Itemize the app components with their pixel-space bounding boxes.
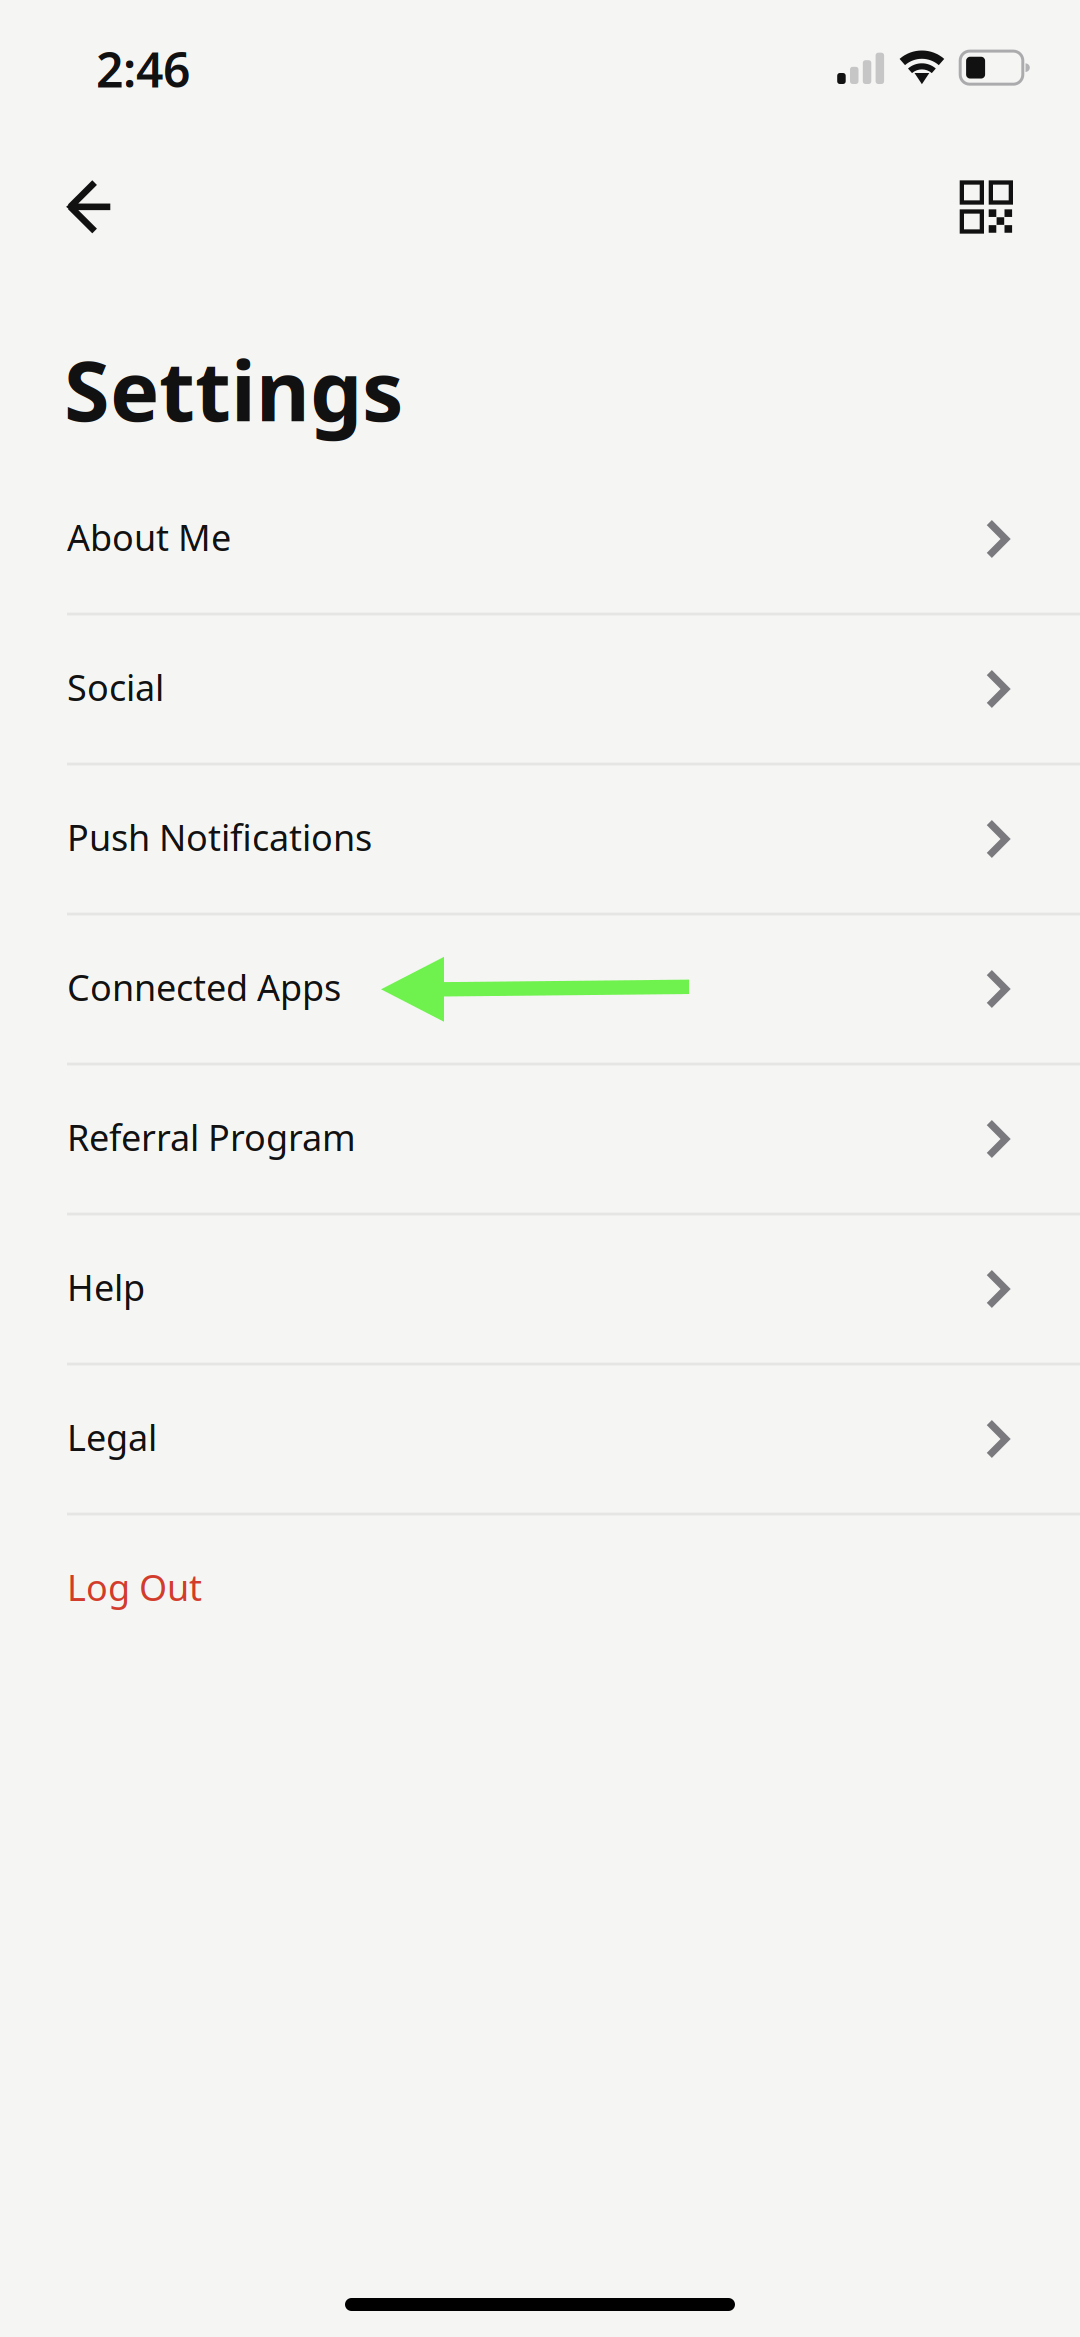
button[interactable]: Log Out bbox=[0, 1515, 1080, 1663]
button[interactable]: Back bbox=[66, 161, 166, 253]
button[interactable]: Scan QR code bbox=[913, 161, 1013, 253]
button[interactable]: Legal bbox=[0, 1365, 1080, 1513]
button[interactable]: Help bbox=[0, 1215, 1080, 1363]
button[interactable]: Referral Program bbox=[0, 1065, 1080, 1213]
staticText: Social bbox=[67, 663, 164, 711]
staticText: Help bbox=[67, 1263, 145, 1311]
staticText: About Me bbox=[67, 513, 231, 561]
staticText: Referral Program bbox=[67, 1113, 356, 1161]
staticText: Legal bbox=[67, 1413, 157, 1461]
button[interactable]: Connected Apps bbox=[0, 915, 1080, 1063]
button[interactable]: About Me bbox=[0, 465, 1080, 613]
staticText: Connected Apps bbox=[67, 963, 341, 1011]
staticText: Push Notifications bbox=[67, 813, 372, 861]
staticText: Settings bbox=[64, 334, 403, 444]
button[interactable]: Push Notifications bbox=[0, 765, 1080, 913]
staticText: Log Out bbox=[67, 1563, 202, 1611]
button[interactable]: Social bbox=[0, 615, 1080, 763]
staticText: 2:46 bbox=[96, 37, 190, 101]
